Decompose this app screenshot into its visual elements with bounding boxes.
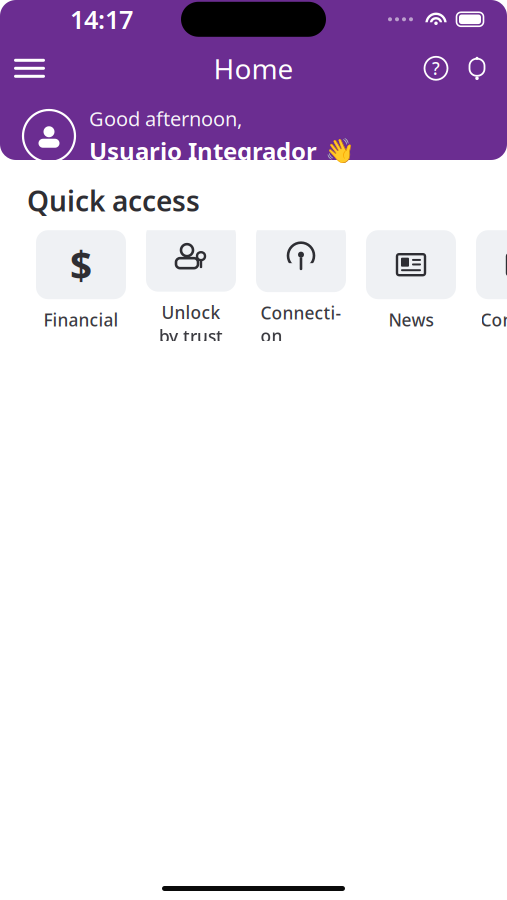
staticText: Unlock	[161, 301, 220, 324]
staticText: ?	[432, 57, 440, 80]
staticText: Quick access	[27, 182, 200, 219]
button[interactable]: Contracts	[476, 230, 507, 340]
staticText: Home	[213, 50, 293, 87]
button[interactable]: Help	[415, 47, 457, 89]
button[interactable]: Unlock	[146, 230, 236, 340]
staticText: $	[70, 239, 92, 290]
button[interactable]: Menu	[0, 48, 59, 89]
staticText: 14:17	[70, 2, 133, 36]
staticText: 👋	[325, 137, 355, 164]
staticText: by trust	[159, 325, 223, 348]
button[interactable]: Notifications	[457, 49, 497, 87]
button[interactable]: $	[36, 230, 126, 340]
button[interactable]: Good afternoon,	[0, 105, 507, 167]
staticText: Good afternoon,	[89, 105, 242, 132]
button[interactable]: Connection	[256, 230, 346, 340]
staticText: Usuario Integrador	[89, 135, 317, 167]
staticText: Contracts	[480, 308, 507, 331]
staticText: News	[388, 308, 433, 331]
staticText: Financial	[43, 308, 118, 331]
button[interactable]: News	[366, 230, 456, 340]
staticText: Connection	[260, 301, 341, 347]
